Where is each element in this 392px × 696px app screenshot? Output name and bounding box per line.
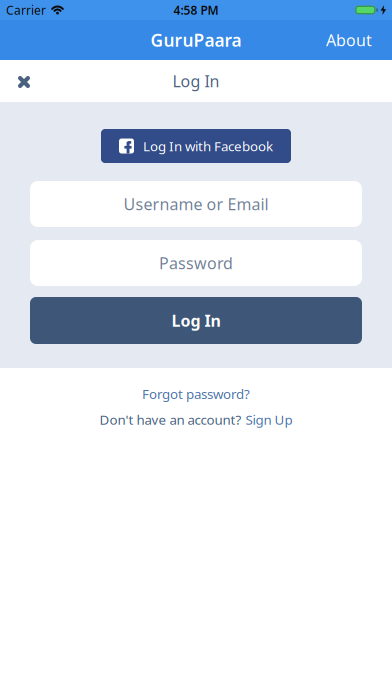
button[interactable]: Log In [30,297,362,344]
button[interactable]: Forgot password? [142,385,250,403]
button[interactable]: Username or Email [30,181,362,227]
staticText: Log In [172,70,219,92]
button[interactable]: About [326,29,372,51]
staticText: 4:58 PM [173,2,218,18]
button[interactable]: Password [30,240,362,286]
staticText: Password [159,252,233,274]
staticText: Carrier [6,2,46,18]
button[interactable]: Close [0,61,30,101]
staticText: Username or Email [123,193,268,215]
staticText: Forgot password? [142,385,250,403]
staticText: Don't have an account? [99,411,241,428]
staticText: Sign Up [245,411,292,428]
button[interactable]: Log In with Facebook [101,129,291,163]
staticText: Log In with Facebook [143,137,273,155]
staticText: About [326,29,372,51]
button[interactable]: Sign Up [245,411,292,428]
staticText: GuruPaara [150,28,241,51]
staticText: Log In [171,310,220,331]
